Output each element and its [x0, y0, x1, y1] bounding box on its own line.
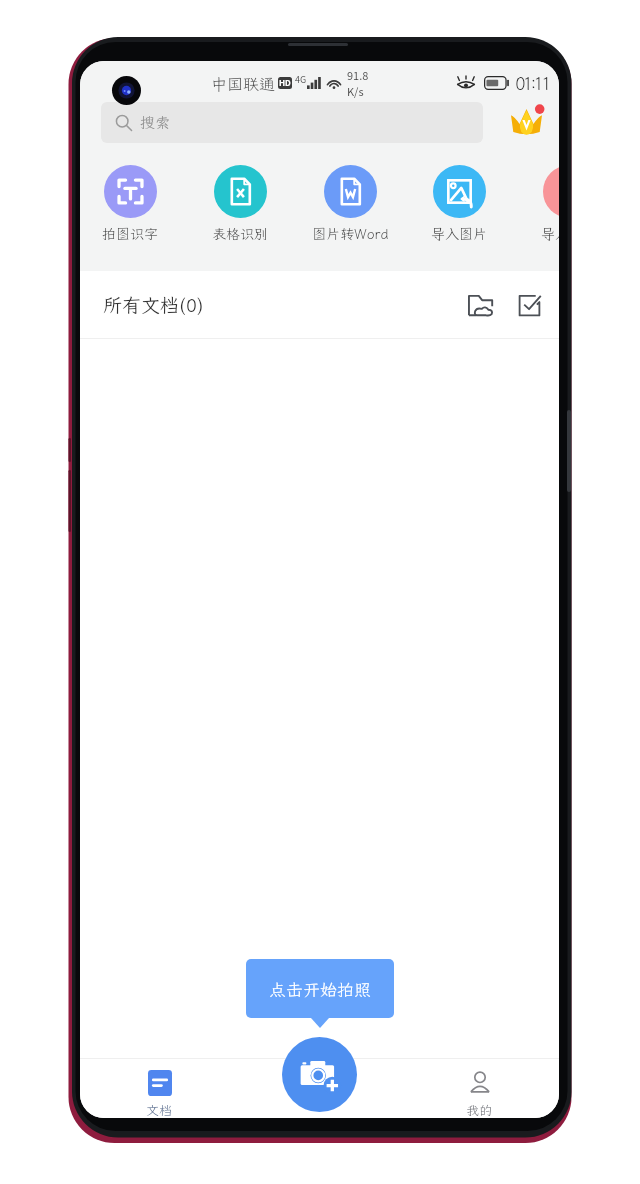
button[interactable]: 导入图片 [411, 155, 507, 243]
staticText: 所有文档(0) [103, 292, 204, 317]
staticText: 91.8 [347, 67, 369, 83]
staticText: 导入图片 [431, 225, 487, 243]
button[interactable]: 图片转Word [302, 155, 398, 243]
staticText: 图片转Word [312, 225, 389, 243]
staticText: 4G [295, 73, 307, 86]
button[interactable]: 表格识别 [192, 155, 288, 243]
button[interactable]: Select documents [509, 285, 549, 325]
staticText: K/s [347, 83, 364, 99]
button[interactable]: 我的 [399, 1058, 559, 1118]
button[interactable]: VIP membership [506, 101, 546, 141]
button[interactable]: 文档 [80, 1058, 239, 1118]
button[interactable]: 导入文件 [521, 155, 559, 243]
button[interactable]: Cloud documents [461, 285, 501, 325]
staticText: 搜索 [140, 113, 171, 133]
staticText: 点击开始拍照 [269, 978, 371, 1000]
button[interactable]: Take photo [282, 1037, 357, 1112]
staticText: 拍图识字 [102, 225, 158, 243]
staticText: 我的 [466, 1102, 493, 1118]
button[interactable]: 点击开始拍照 [246, 959, 394, 1018]
staticText: 01:11 [515, 71, 549, 95]
button[interactable]: 搜索 [101, 102, 483, 143]
staticText: 中国联通 [211, 73, 276, 94]
button[interactable]: 拍图识字 [82, 155, 178, 243]
staticText: HD [279, 77, 291, 89]
staticText: 表格识别 [212, 225, 268, 243]
staticText: 导入文件 [541, 225, 559, 243]
staticText: 文档 [146, 1102, 173, 1118]
